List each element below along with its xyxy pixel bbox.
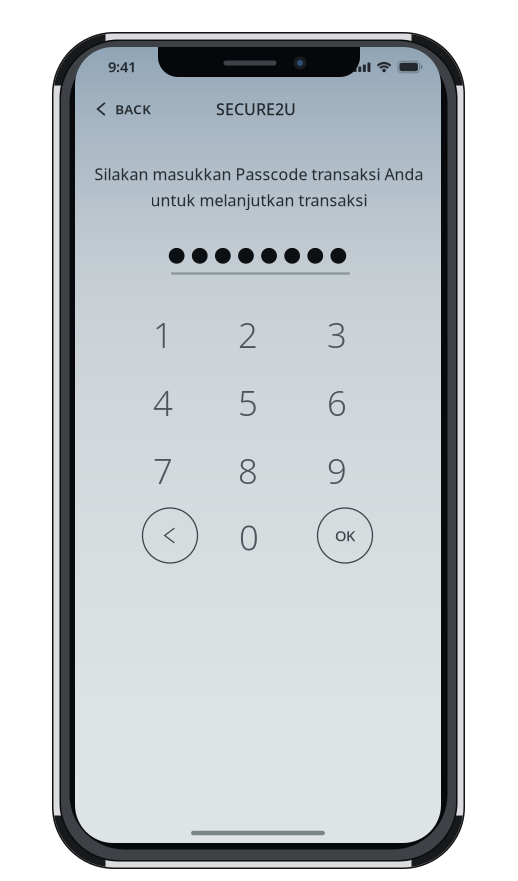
button[interactable]: 2: [204, 303, 291, 365]
staticText: 9: [327, 447, 347, 493]
button[interactable]: 3: [293, 303, 380, 365]
staticText: 0: [239, 514, 259, 560]
staticText: OK: [335, 526, 355, 545]
staticText: BACK: [115, 100, 151, 118]
button[interactable]: OK: [301, 504, 388, 566]
button[interactable]: 4: [119, 371, 206, 433]
button[interactable]: Delete: [126, 504, 213, 566]
button[interactable]: BACK: [83, 89, 165, 129]
button[interactable]: 1: [119, 303, 206, 365]
staticText: SECURE2U: [216, 98, 296, 120]
staticText: 3: [327, 311, 347, 357]
staticText: Silakan masukkan Passcode transaksi Anda: [94, 163, 423, 185]
button[interactable]: 7: [119, 439, 206, 501]
staticText: 4: [153, 379, 173, 425]
button[interactable]: 8: [204, 439, 291, 501]
button[interactable]: 9: [293, 439, 380, 501]
staticText: 1: [153, 311, 173, 357]
staticText: 6: [327, 379, 347, 425]
staticText: 5: [238, 379, 258, 425]
staticText: 8: [238, 447, 258, 493]
staticText: 2: [238, 311, 258, 357]
button[interactable]: 0: [205, 506, 292, 568]
button[interactable]: 5: [204, 371, 291, 433]
staticText: 7: [153, 447, 173, 493]
staticText: untuk melanjutkan transaksi: [150, 189, 367, 211]
staticText: 9:41: [108, 57, 136, 76]
button[interactable]: 6: [293, 371, 380, 433]
